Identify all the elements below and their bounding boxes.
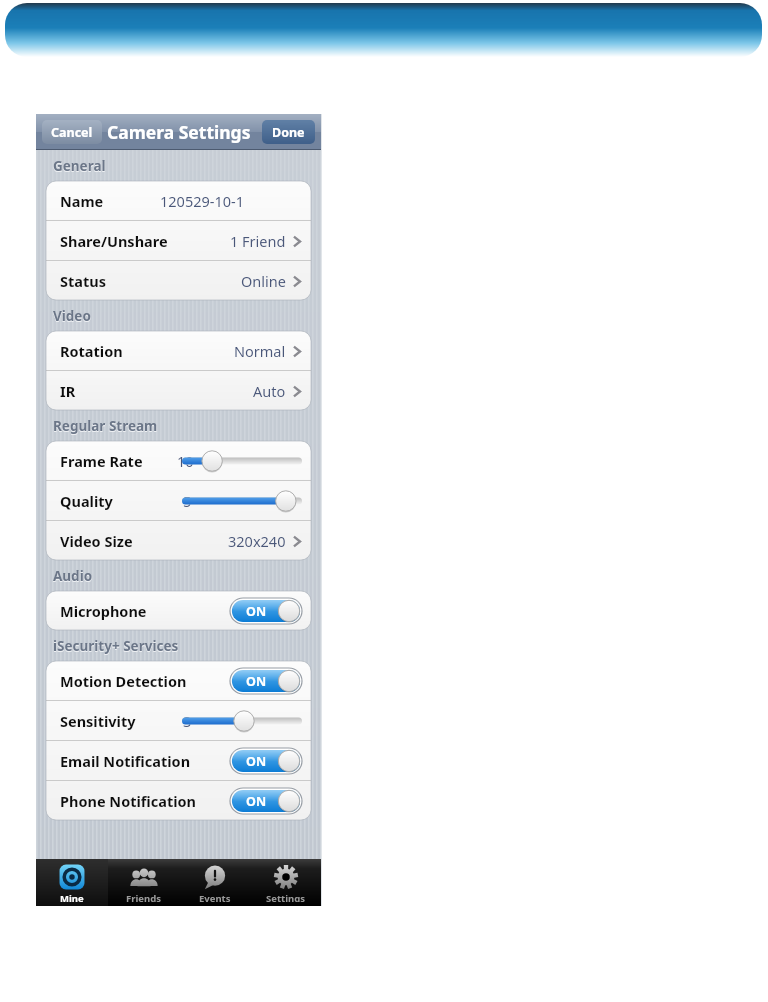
staticText: Status [60, 271, 106, 291]
button[interactable]: Email Notification switch, on [230, 748, 302, 774]
staticText: ON [246, 603, 267, 620]
staticText: 1 Friend [230, 231, 286, 251]
button[interactable]: Motion Detection switch, on [230, 668, 302, 694]
staticText: General [53, 157, 106, 175]
button[interactable]: Rotation [46, 331, 311, 370]
button[interactable]: Microphone switch, on [230, 598, 302, 624]
button[interactable]: Mine [36, 859, 108, 906]
staticText: Regular Stream [53, 418, 158, 436]
staticText: Video [53, 308, 91, 326]
staticText: Rotation [60, 341, 123, 361]
staticText: Phone Notification [60, 791, 197, 811]
staticText: Name [60, 191, 104, 211]
staticText: Mine [60, 892, 84, 902]
staticText: Video [53, 307, 91, 325]
button[interactable]: Sensitivity [46, 701, 311, 740]
staticText: Audio [53, 567, 93, 585]
staticText: IR [60, 381, 76, 401]
staticText: General [53, 158, 106, 176]
staticText: ON [246, 753, 267, 770]
staticText: Auto [253, 381, 286, 401]
staticText: 10 [177, 451, 194, 471]
staticText: iSecurity+ Services [53, 637, 179, 655]
staticText: Frame Rate [60, 451, 143, 471]
staticText: Done [272, 124, 305, 141]
staticText: Settings [266, 892, 305, 902]
staticText: Quality [60, 491, 113, 511]
button[interactable]: Cancel [42, 120, 102, 144]
staticText: 3 [183, 711, 192, 731]
button[interactable]: Done [262, 120, 315, 144]
staticText: Microphone [60, 601, 147, 621]
staticText: Sensitivity [60, 711, 136, 731]
staticText: Audio [53, 568, 93, 586]
button[interactable]: Friends [108, 859, 179, 906]
staticText: ON [246, 793, 267, 810]
staticText: Regular Stream [53, 417, 158, 435]
button[interactable]: Phone Notification [46, 781, 311, 820]
staticText: Friends [126, 892, 161, 902]
staticText: Camera Settings [107, 120, 251, 144]
button[interactable]: Email Notification [46, 741, 311, 780]
button[interactable]: Settings [250, 859, 321, 906]
staticText: Online [241, 271, 286, 291]
staticText: Events [199, 892, 231, 902]
button[interactable]: Phone Notification switch, on [230, 788, 302, 814]
button[interactable]: IR [46, 371, 311, 410]
button[interactable]: Quality [46, 481, 311, 520]
staticText: Share/Unshare [60, 231, 168, 251]
staticText: Video Size [60, 531, 133, 551]
staticText: Cancel [51, 124, 93, 141]
staticText: 320x240 [228, 531, 286, 551]
staticText: iSecurity+ Services [53, 638, 179, 656]
button[interactable]: Frame Rate [46, 441, 311, 480]
button[interactable]: Events [179, 859, 250, 906]
staticText: Motion Detection [60, 671, 187, 691]
button[interactable]: Motion Detection [46, 661, 311, 700]
button[interactable]: Name [46, 181, 311, 220]
staticText: Normal [234, 341, 286, 361]
staticText: ON [246, 673, 267, 690]
staticText: 5 [183, 491, 192, 511]
staticText: Email Notification [60, 751, 191, 771]
button[interactable]: Microphone [46, 591, 311, 630]
button[interactable]: Video Size [46, 521, 311, 560]
button[interactable]: Share/Unshare [46, 221, 311, 260]
staticText: 120529-10-1 [160, 191, 244, 211]
button[interactable]: Status [46, 261, 311, 300]
